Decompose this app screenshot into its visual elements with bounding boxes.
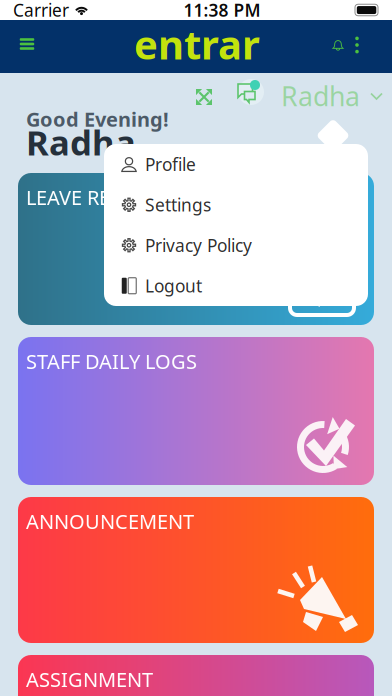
staticText: Radha — [26, 119, 136, 165]
staticText: Profile — [145, 153, 196, 176]
button[interactable]: Privacy Policy — [104, 225, 368, 265]
staticText: ANNOUNCEMENT — [26, 508, 194, 535]
staticText: 11:38 PM — [183, 0, 260, 21]
staticText: Radha — [281, 78, 360, 114]
button[interactable]: Settings — [104, 184, 368, 225]
button[interactable]: entrar — [134, 24, 260, 64]
button[interactable]: Messages — [235, 82, 265, 108]
button[interactable]: Radha — [281, 83, 383, 109]
staticText: LEAVE REQUEST — [26, 184, 174, 211]
button[interactable]: ASSIGNMENT — [18, 655, 374, 696]
staticText: Logout — [145, 274, 202, 297]
button[interactable]: Profile — [104, 144, 368, 184]
button[interactable]: Menu — [7, 27, 47, 61]
staticText: Good Evening! — [26, 106, 169, 132]
staticText: Settings — [145, 193, 211, 216]
staticText: ASSIGNMENT — [26, 666, 153, 693]
staticText: Carrier — [13, 0, 69, 21]
button[interactable]: ANNOUNCEMENT — [18, 497, 374, 643]
staticText: STAFF DAILY LOGS — [26, 348, 197, 375]
button[interactable]: STAFF DAILY LOGS — [18, 337, 374, 485]
button[interactable]: Expand — [189, 84, 219, 110]
staticText: entrar — [134, 17, 260, 70]
staticText: Privacy Policy — [145, 234, 252, 257]
button[interactable]: Logout — [104, 265, 368, 306]
button[interactable]: LEAVE REQUEST — [18, 173, 374, 325]
button[interactable]: Notifications — [324, 28, 352, 62]
button[interactable]: More options — [346, 28, 368, 62]
